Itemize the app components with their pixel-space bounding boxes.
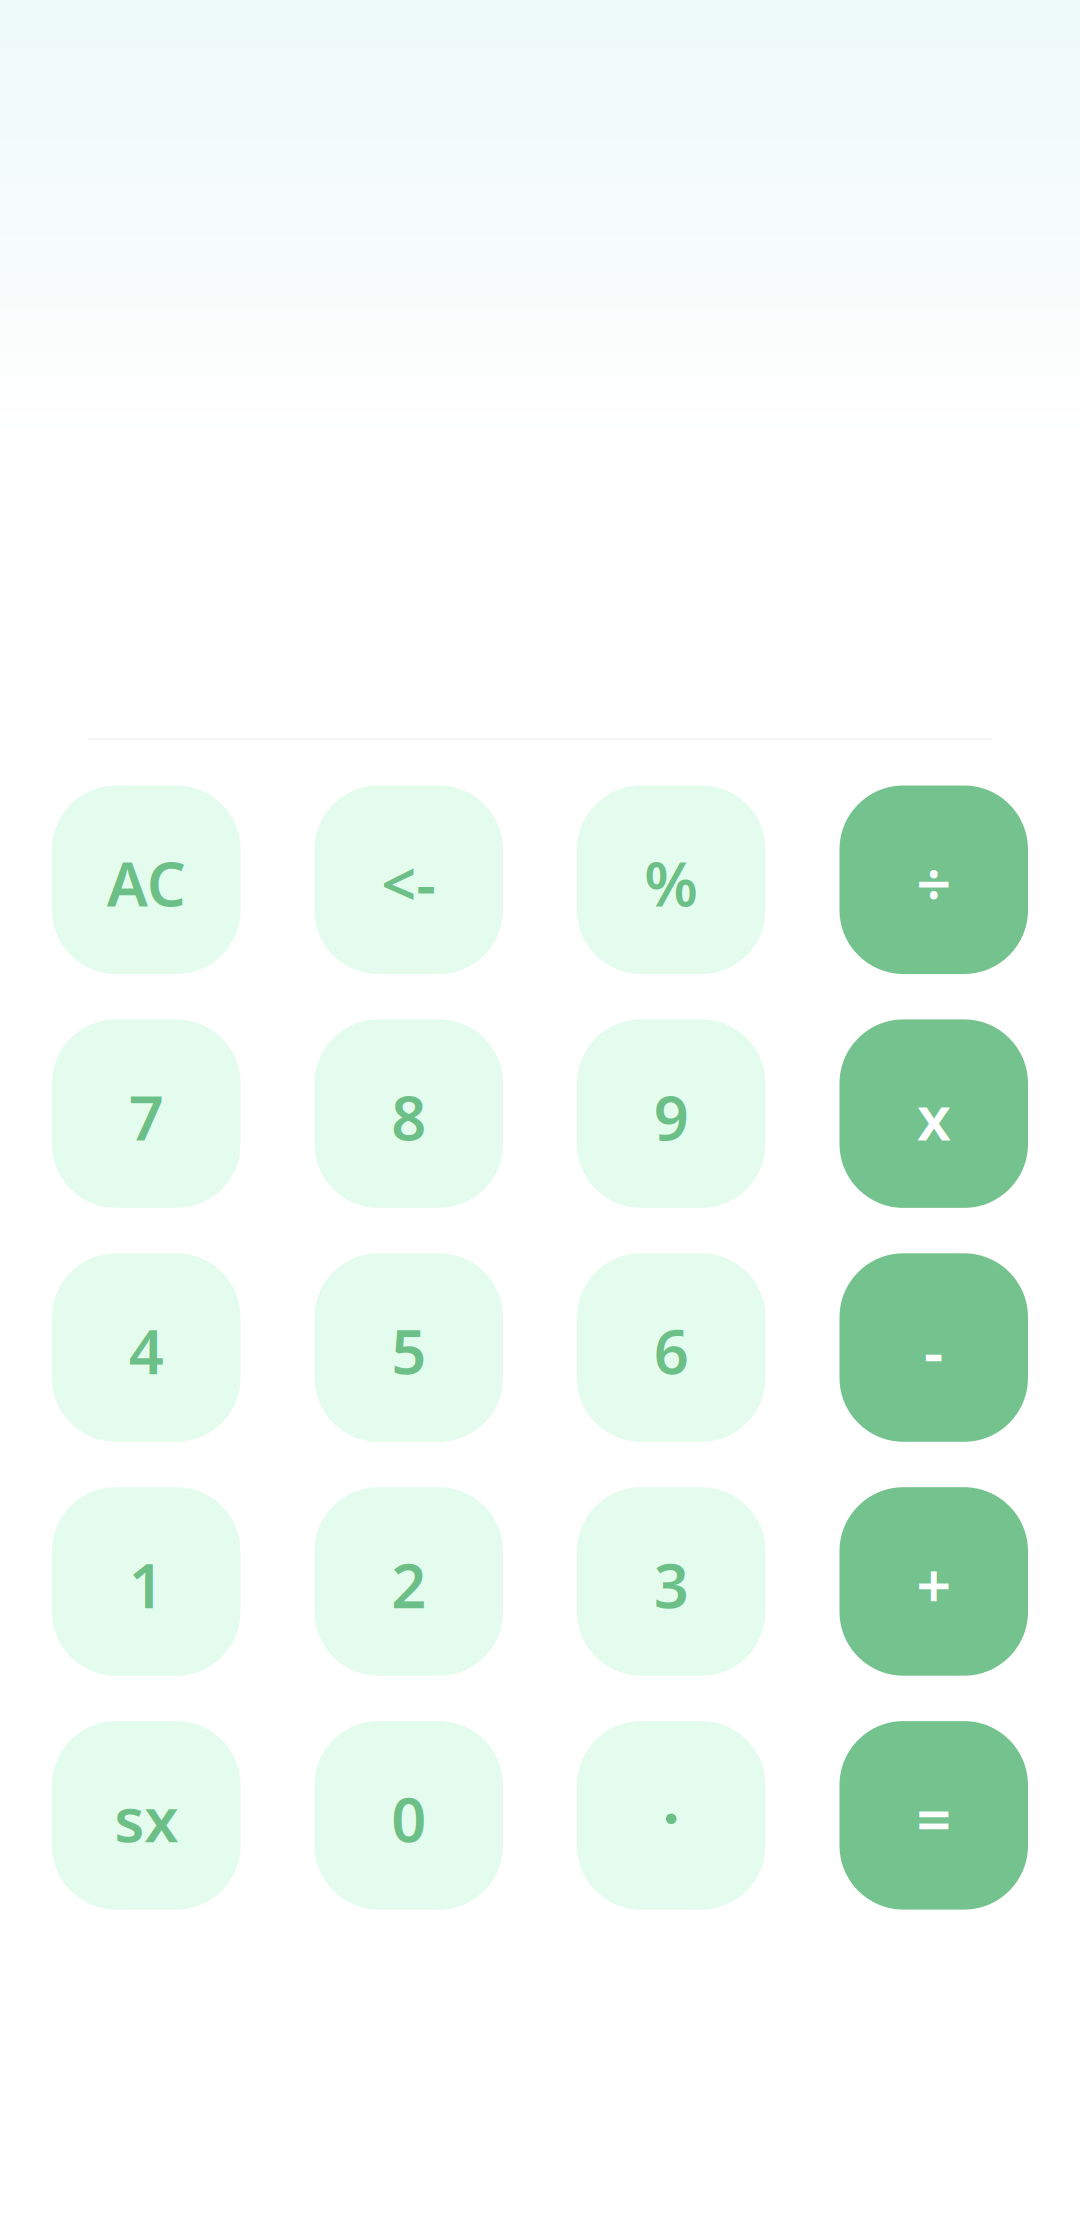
button[interactable]: 1 [52,1487,240,1676]
staticText: 4 [129,1310,164,1391]
staticText: 8 [391,1076,426,1157]
button[interactable]: + [839,1487,1028,1676]
staticText: x [917,1076,951,1157]
staticText: <- [381,842,436,923]
button[interactable]: sx [52,1721,240,1910]
staticText: 3 [654,1544,689,1625]
button[interactable]: % [577,785,765,974]
button[interactable]: 3 [577,1487,765,1676]
staticText: ÷ [916,842,951,923]
button[interactable]: 9 [577,1019,765,1208]
staticText: 1 [129,1544,164,1625]
staticText: 0 [391,1778,426,1859]
staticText: 9 [654,1076,689,1157]
button[interactable]: ÷ [839,785,1028,974]
button[interactable]: - [839,1253,1028,1442]
button[interactable]: x [839,1019,1028,1208]
button[interactable]: 7 [52,1019,240,1208]
staticText: 2 [391,1544,426,1625]
staticText: + [916,1544,951,1625]
button[interactable]: 8 [314,1019,503,1208]
staticText: AC [107,842,186,923]
button[interactable]: 6 [577,1253,765,1442]
button[interactable]: 5 [314,1253,503,1442]
button[interactable]: <- [314,785,503,974]
button[interactable]: = [839,1721,1028,1910]
button[interactable]: Decimal point [577,1721,765,1910]
staticText: - [924,1310,944,1391]
staticText: 5 [391,1310,426,1391]
button[interactable]: 0 [314,1721,503,1910]
staticText: 6 [654,1310,689,1391]
staticText: = [916,1778,951,1859]
staticText: sx [114,1778,178,1859]
button[interactable]: 4 [52,1253,240,1442]
staticText: 7 [129,1076,164,1157]
staticText: % [644,842,698,923]
button[interactable]: AC [52,785,240,974]
button[interactable]: 2 [314,1487,503,1676]
